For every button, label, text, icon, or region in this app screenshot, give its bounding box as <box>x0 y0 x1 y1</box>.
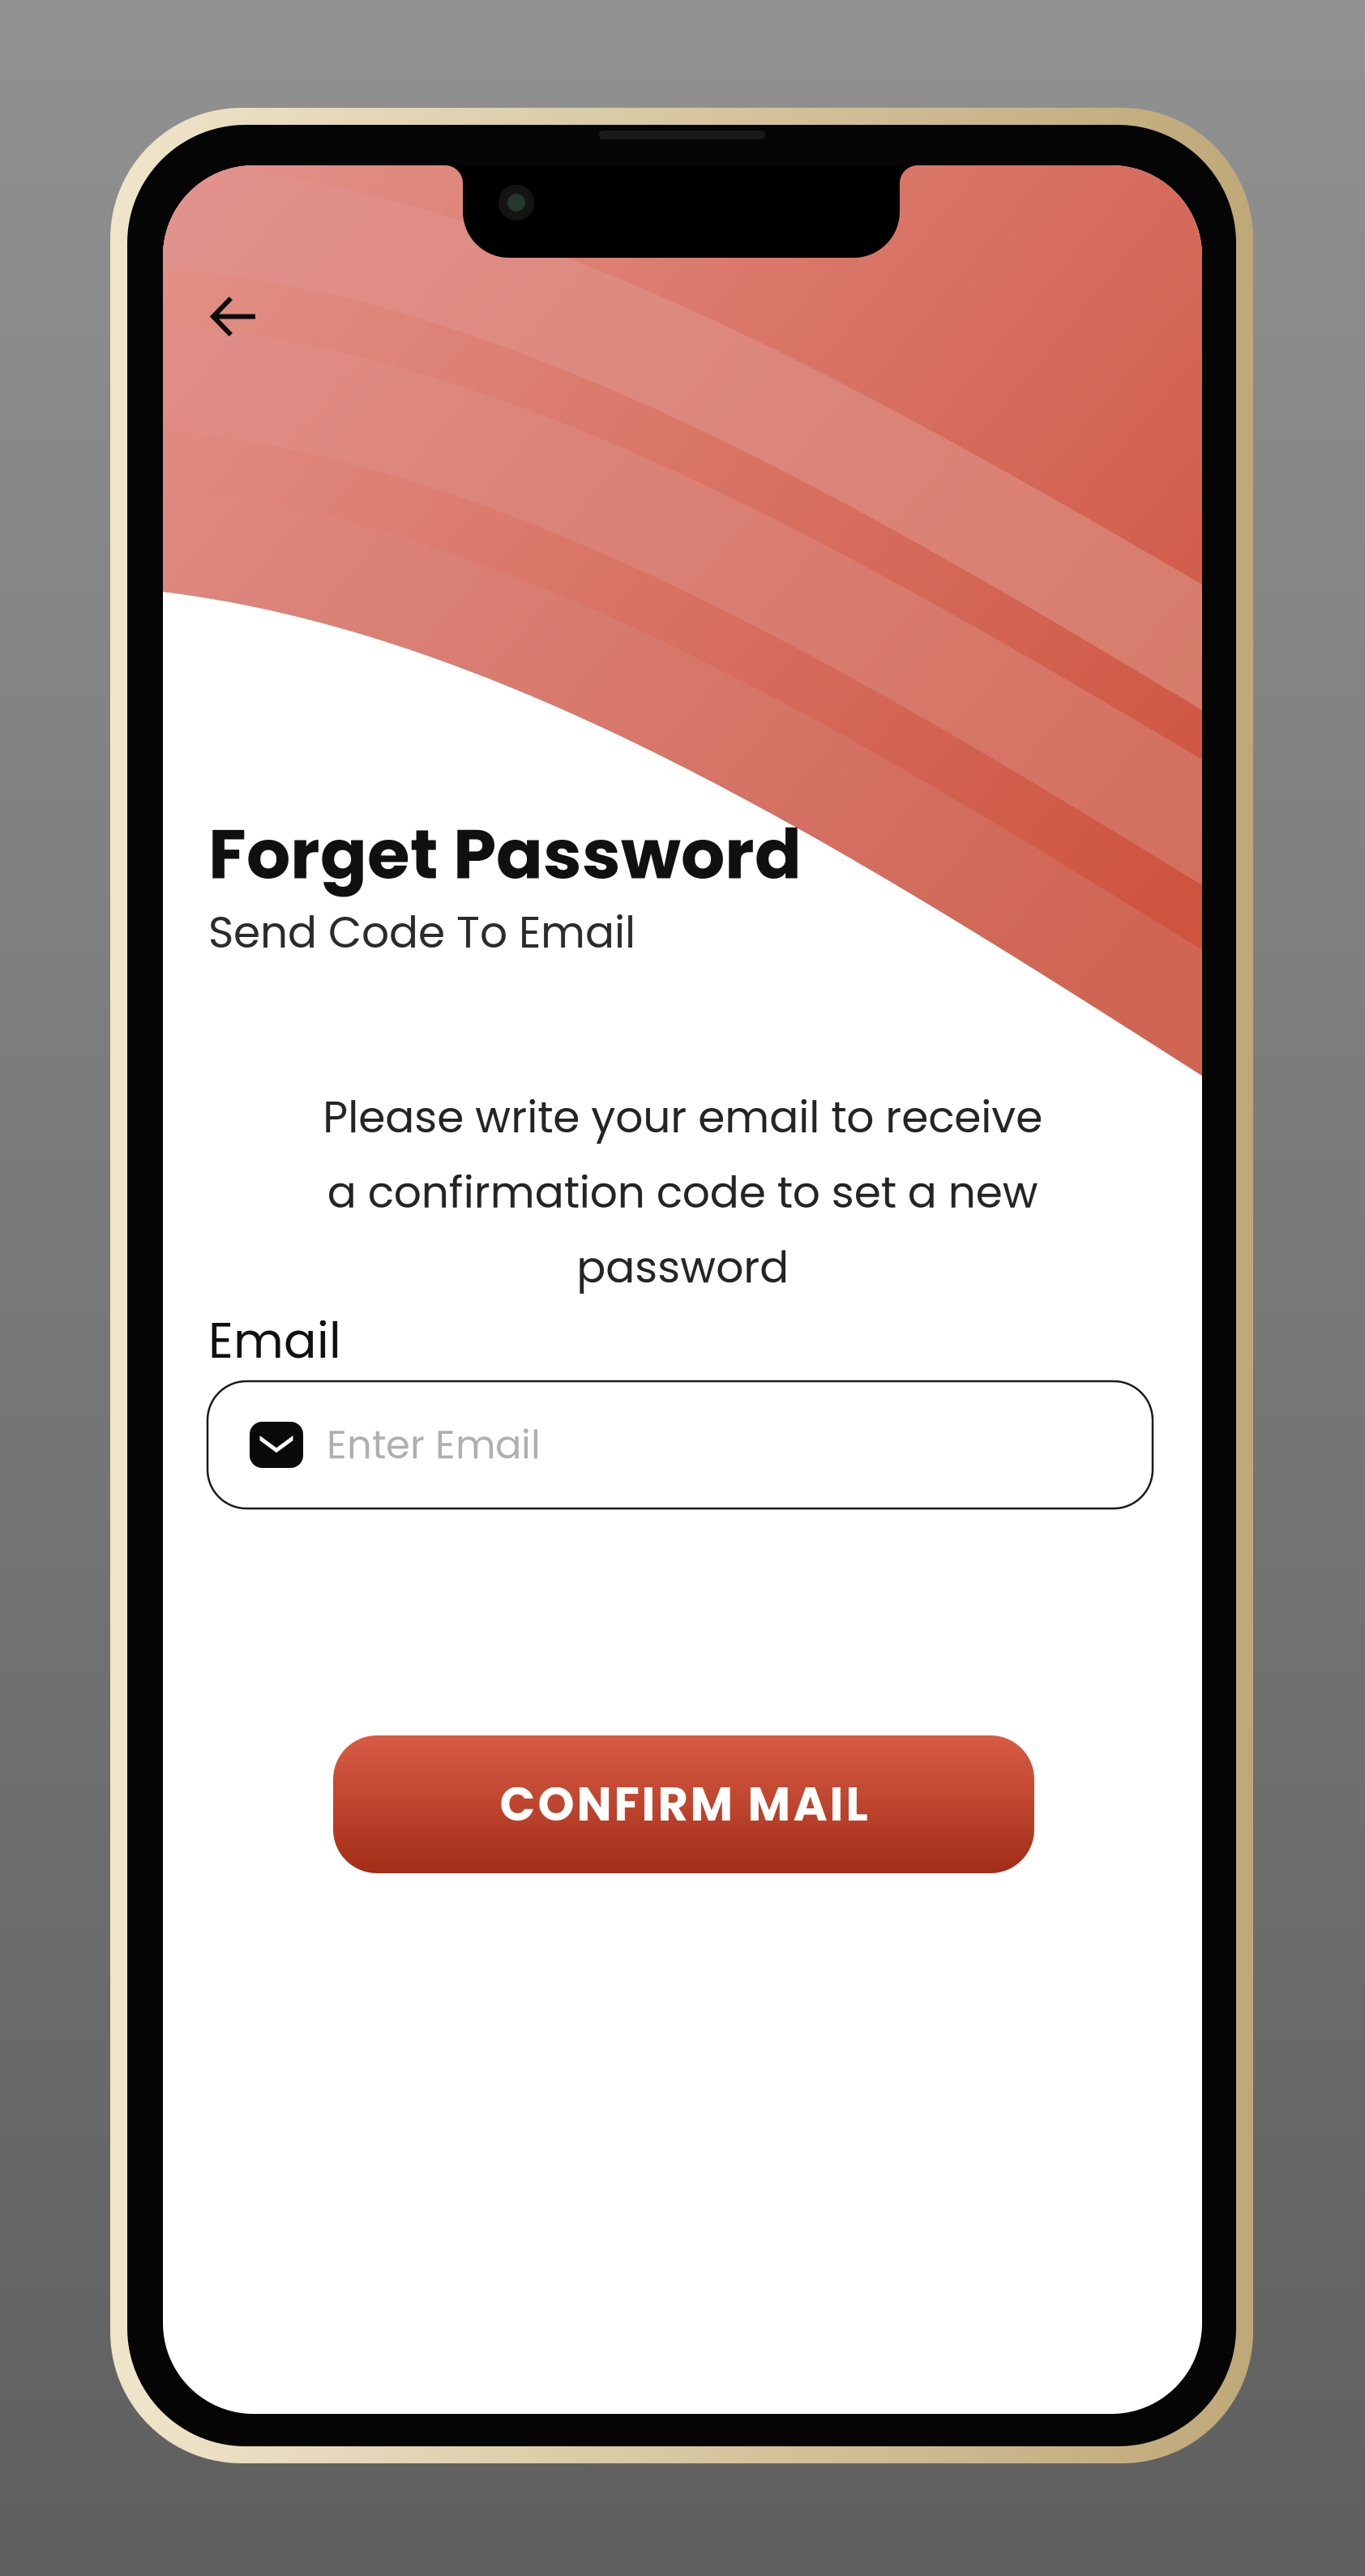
staticText: Forget Password <box>208 806 802 903</box>
staticText: Send Code To Email <box>208 902 635 963</box>
button[interactable]: Back <box>186 272 281 362</box>
staticText: Email <box>208 1307 341 1375</box>
button[interactable]: CONFIRM MAIL <box>333 1735 1034 1873</box>
staticText: Enter Email <box>327 1418 541 1472</box>
staticText: Please write your email to receive a con… <box>323 1087 1042 1298</box>
staticText: CONFIRM MAIL <box>500 1772 868 1837</box>
